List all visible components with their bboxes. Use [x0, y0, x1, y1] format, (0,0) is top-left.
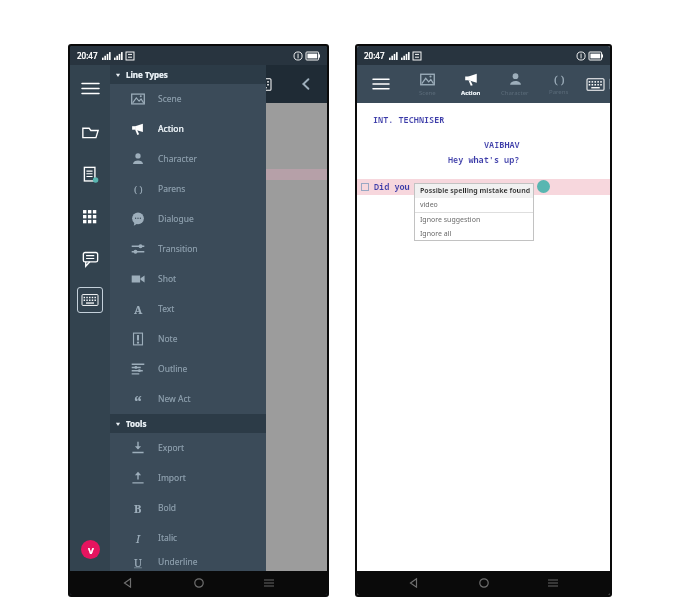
button[interactable]: Back	[116, 571, 140, 595]
button[interactable]: Dialogue	[110, 204, 266, 234]
button[interactable]: Import	[110, 463, 266, 493]
staticText: VAIBHAV	[484, 139, 520, 151]
staticText: Text	[158, 303, 175, 315]
staticText: Character	[501, 89, 529, 97]
staticText: Possible spelling mistake found	[420, 186, 531, 196]
button[interactable]: Menu	[367, 70, 395, 98]
button[interactable]: Recents	[541, 571, 565, 595]
button[interactable]: Select line	[361, 183, 369, 191]
staticText: video	[420, 200, 438, 210]
button[interactable]: Grid	[77, 203, 103, 229]
staticText: Transition	[158, 243, 198, 255]
button[interactable]: Line Types	[110, 65, 266, 84]
button[interactable]: B	[110, 493, 266, 523]
button[interactable]: video	[414, 198, 534, 212]
staticText: INT. TECHNISER	[373, 114, 445, 126]
staticText: Character	[158, 153, 197, 165]
staticText: V	[88, 544, 94, 556]
button[interactable]: Scene	[405, 65, 449, 103]
staticText: Scene	[419, 89, 436, 97]
button[interactable]: Keyboard	[77, 287, 103, 313]
staticText: Action	[158, 123, 184, 135]
staticText: Line Types	[126, 69, 168, 80]
button[interactable]: Ignore all	[414, 227, 534, 241]
staticText: I	[136, 531, 141, 546]
staticText: Note	[158, 333, 178, 345]
button[interactable]: Profile	[81, 540, 100, 559]
staticText: Shot	[158, 273, 177, 285]
staticText: Bold	[158, 502, 177, 514]
button[interactable]: Keyboard	[247, 69, 277, 99]
button[interactable]: Folder	[77, 119, 103, 145]
staticText: Underline	[158, 556, 198, 568]
button[interactable]: Export	[110, 433, 266, 463]
button[interactable]: Character	[493, 65, 537, 103]
button[interactable]: Shot	[110, 264, 266, 294]
staticText: 20:47	[364, 50, 385, 61]
button[interactable]: ( )	[110, 174, 266, 204]
staticText: A	[134, 302, 143, 317]
button[interactable]: Ignore suggestion	[414, 213, 534, 227]
staticText: Did you check out the new	[374, 181, 507, 193]
button[interactable]: Transition	[110, 234, 266, 264]
button[interactable]: Back	[293, 71, 319, 97]
staticText: ( )	[554, 72, 565, 87]
button[interactable]: Outline	[110, 354, 266, 384]
button[interactable]: Menu	[77, 75, 103, 101]
button[interactable]: Character	[110, 144, 266, 174]
button[interactable]: Home	[472, 571, 496, 595]
button[interactable]: Keyboard	[581, 70, 609, 98]
staticText: Tools	[126, 418, 147, 429]
button[interactable]: Selection handle	[537, 180, 550, 193]
staticText: Export	[158, 442, 185, 454]
button[interactable]: Tools	[110, 414, 266, 433]
staticText: Outline	[158, 363, 188, 375]
button[interactable]: “	[110, 384, 266, 414]
staticText: vide?	[507, 181, 533, 193]
staticText: “	[134, 391, 142, 407]
staticText: Hey what's up?	[448, 154, 520, 166]
button[interactable]: Document	[77, 161, 103, 187]
staticText: Ignore suggestion	[420, 215, 481, 225]
staticText: New Act	[158, 393, 191, 405]
button[interactable]: Home	[187, 571, 211, 595]
button[interactable]: Comments	[77, 245, 103, 271]
staticText: B	[134, 501, 142, 516]
button[interactable]: ( )	[537, 65, 581, 103]
staticText: Dialogue	[158, 213, 194, 225]
button[interactable]: A	[110, 294, 266, 324]
button[interactable]: Action	[449, 65, 493, 103]
button[interactable]: U	[110, 553, 266, 571]
button[interactable]: Action	[110, 114, 266, 144]
button[interactable]: Recents	[257, 571, 281, 595]
staticText: Import	[158, 472, 186, 484]
staticText: Action	[461, 89, 481, 97]
staticText: Parens	[158, 183, 186, 195]
button[interactable]: Back	[402, 571, 426, 595]
staticText: U	[134, 555, 142, 570]
button[interactable]: Scene	[110, 84, 266, 114]
staticText: Scene	[158, 93, 182, 105]
staticText: ( )	[134, 183, 143, 195]
button[interactable]: Note	[110, 324, 266, 354]
staticText: Parens	[549, 88, 569, 96]
staticText: Italic	[158, 532, 178, 544]
staticText: 20:47	[77, 50, 98, 61]
staticText: Ignore all	[420, 229, 452, 239]
button[interactable]: I	[110, 523, 266, 553]
